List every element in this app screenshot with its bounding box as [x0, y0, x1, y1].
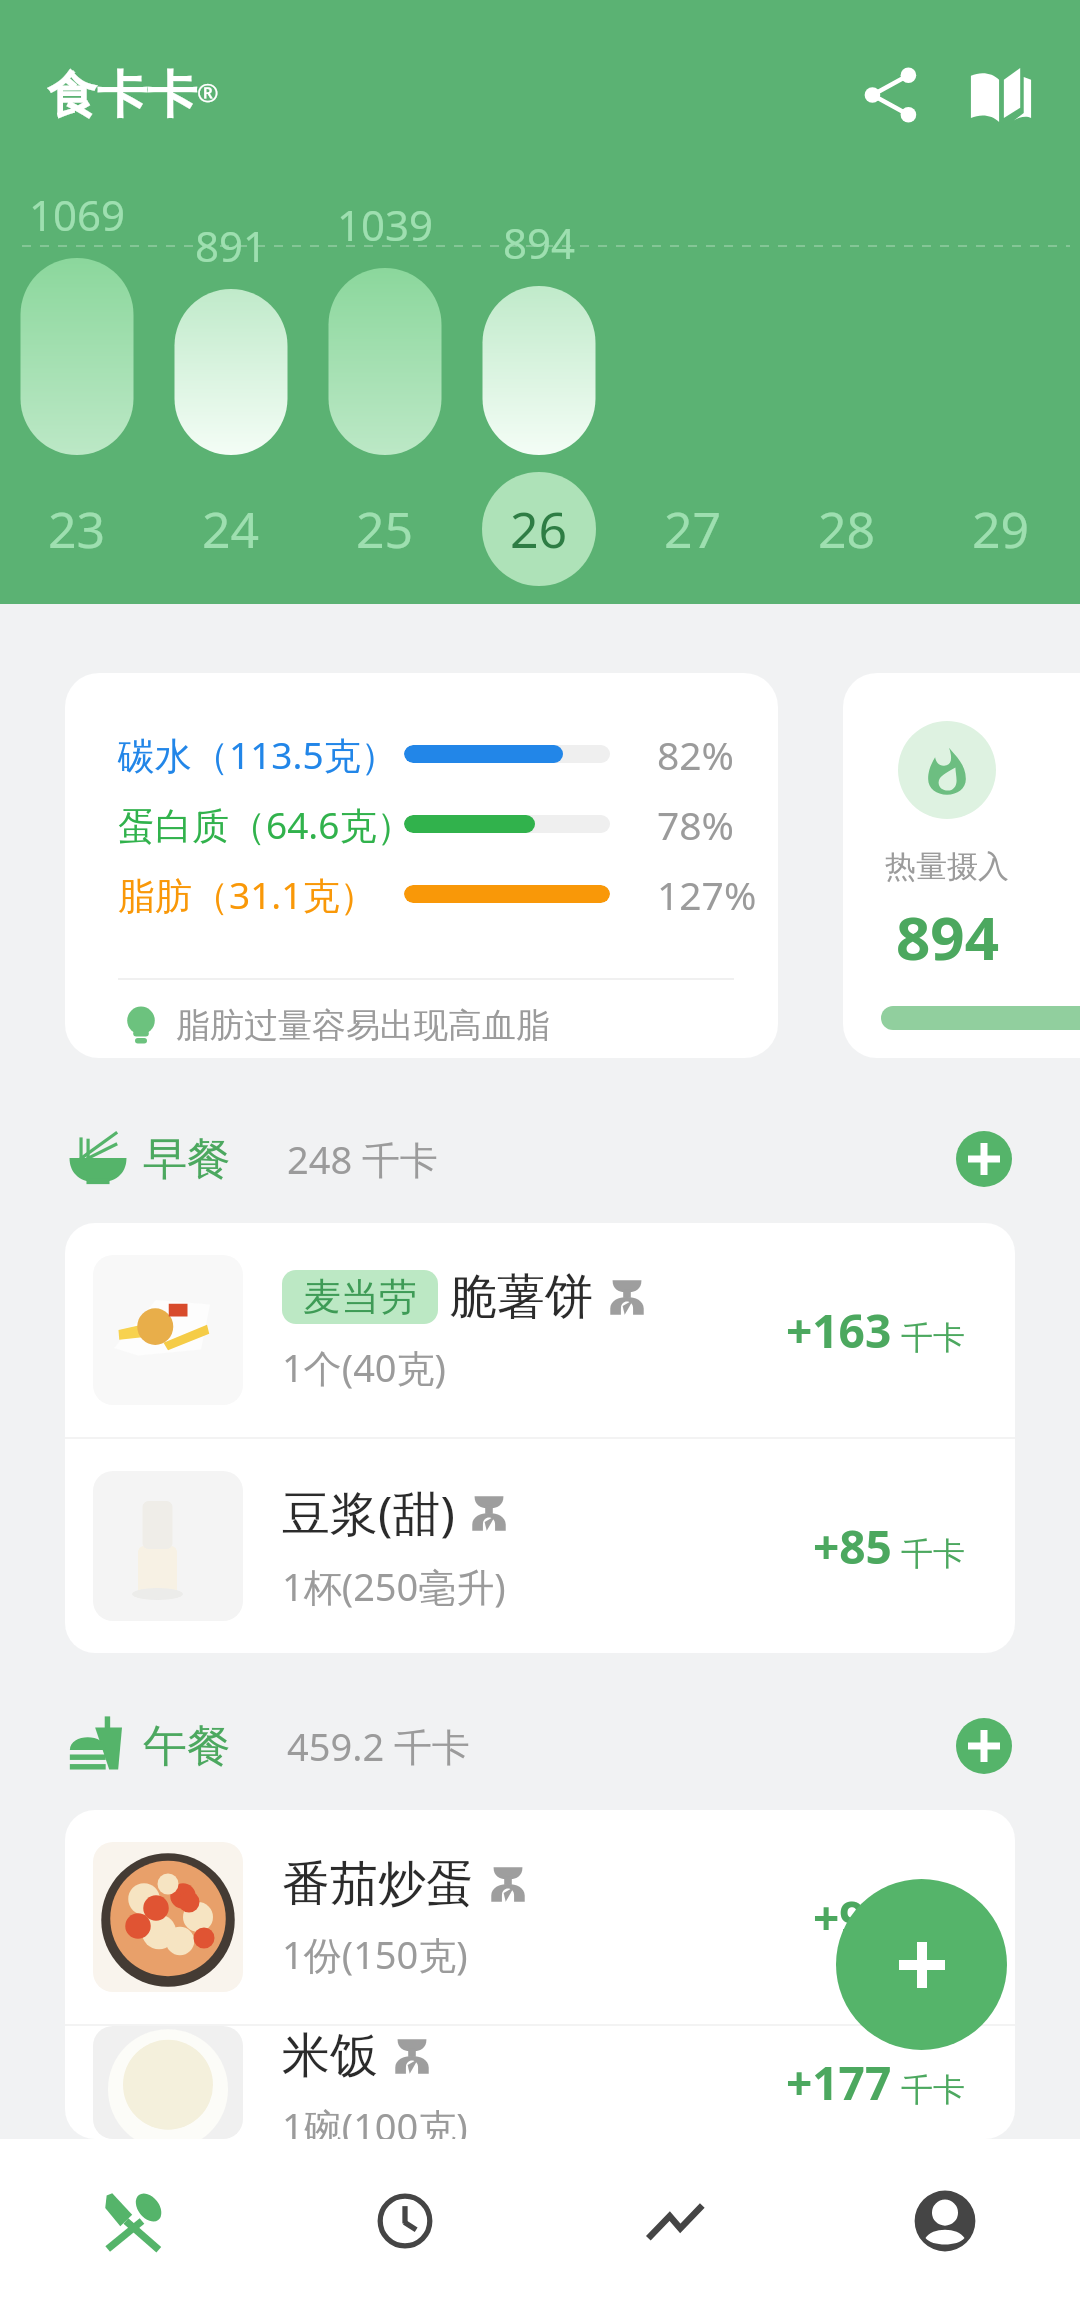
staticText: 碳水（113.5克）	[118, 729, 398, 780]
staticText: 78%	[657, 798, 735, 851]
staticText: 千卡	[901, 1318, 965, 1358]
staticText: +177	[786, 2051, 892, 2114]
button[interactable]: Trends	[540, 2139, 810, 2306]
button[interactable]: Add to 午餐	[956, 1718, 1012, 1774]
staticText: 脆薯饼	[449, 1267, 593, 1327]
staticText: 热量摄入	[885, 847, 1009, 886]
staticText: +99	[813, 1886, 892, 1949]
staticText: 1个(40克)	[282, 1341, 447, 1393]
staticText: 番茄炒蛋	[282, 1854, 474, 1914]
staticText: 1碗(100克)	[282, 2100, 468, 2139]
button[interactable]: 26	[482, 472, 596, 586]
staticText: 27	[664, 495, 722, 563]
button[interactable]: 碳水（113.5克）	[65, 673, 778, 1058]
staticText: 894	[503, 214, 576, 271]
staticText: 891	[195, 217, 268, 274]
staticText: +163	[786, 1299, 892, 1362]
staticText: 脂肪过量容易出现高血脂	[176, 1004, 550, 1047]
staticText: 26	[510, 495, 568, 563]
staticText: 千卡	[901, 2070, 965, 2110]
button[interactable]: 米饭	[65, 2026, 1015, 2139]
button[interactable]: Add to 早餐	[956, 1131, 1012, 1187]
staticText: 食卡卡	[47, 64, 197, 127]
staticText: +85	[813, 1515, 892, 1578]
staticText: 午餐	[143, 1719, 231, 1774]
staticText: 82%	[657, 728, 735, 781]
staticText: 459.2 千卡	[287, 1720, 471, 1772]
button[interactable]: 热量摄入	[843, 673, 1080, 1058]
staticText: 894	[896, 896, 999, 978]
button[interactable]: 29	[944, 472, 1058, 586]
button[interactable]: Share	[841, 45, 941, 145]
staticText: 豆浆(甜)	[282, 1480, 455, 1546]
button[interactable]: 24	[174, 472, 288, 586]
staticText: 1039	[337, 196, 434, 253]
staticText: 1069	[29, 186, 126, 243]
staticText: 248 千卡	[287, 1133, 439, 1185]
button[interactable]: 28	[790, 472, 904, 586]
staticText: 24	[202, 495, 260, 563]
staticText: 蛋白质（64.6克）	[118, 799, 404, 850]
staticText: 米饭	[282, 2026, 378, 2086]
button[interactable]: Profile	[810, 2139, 1080, 2306]
staticText: 麦当劳	[303, 1273, 417, 1321]
button[interactable]: 23	[20, 472, 134, 586]
button[interactable]: Add food	[836, 1879, 1007, 2050]
button[interactable]: 麦当劳	[65, 1223, 1015, 1437]
button[interactable]: Diary	[951, 45, 1051, 145]
button[interactable]: 番茄炒蛋	[65, 1810, 1015, 2024]
staticText: 千卡	[901, 1905, 965, 1945]
staticText: 早餐	[143, 1132, 231, 1187]
staticText: 127%	[657, 868, 757, 921]
button[interactable]: Food	[0, 2139, 270, 2306]
staticText: 25	[356, 495, 414, 563]
button[interactable]: History	[270, 2139, 540, 2306]
staticText: 1杯(250毫升)	[282, 1560, 506, 1612]
staticText: 脂肪（31.1克）	[118, 869, 377, 920]
staticText: 23	[48, 495, 106, 563]
staticText: 千卡	[901, 1534, 965, 1574]
staticText: 29	[972, 495, 1030, 563]
button[interactable]: 27	[636, 472, 750, 586]
staticText: 1份(150克)	[282, 1928, 468, 1980]
staticText: 28	[818, 495, 876, 563]
button[interactable]: 25	[328, 472, 442, 586]
button[interactable]: 豆浆(甜)	[65, 1439, 1015, 1653]
staticText: ®	[197, 74, 219, 109]
